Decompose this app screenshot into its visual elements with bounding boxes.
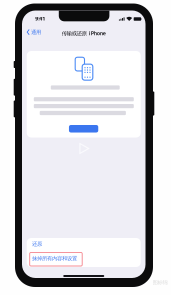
staticText: 还原 xyxy=(32,241,42,247)
staticText: 图标锦 xyxy=(152,279,167,286)
staticText: 传输或还原 iPhone xyxy=(62,30,106,37)
staticText: 抹掉所有内容和设置 xyxy=(32,255,77,262)
button[interactable]: 通用 xyxy=(26,27,42,37)
staticText: 通用 xyxy=(31,29,41,35)
button[interactable] xyxy=(69,125,98,132)
staticText: 9:41 xyxy=(35,15,45,22)
button[interactable]: 还原 xyxy=(32,237,140,250)
button[interactable]: 抹掉所有内容和设置 xyxy=(32,251,140,265)
